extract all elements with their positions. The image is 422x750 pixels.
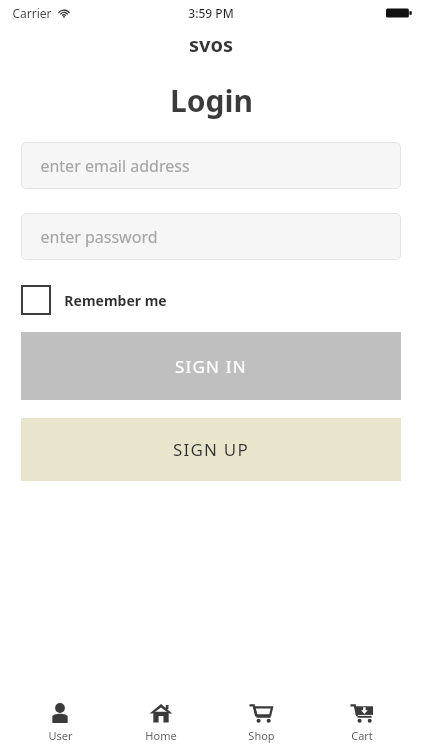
button[interactable]: Cart [322,697,402,747]
button[interactable]: User [20,697,100,747]
staticText: Remember me [64,291,167,310]
button[interactable]: Home [121,697,201,747]
staticText: Home [145,728,177,743]
staticText: User [48,728,73,743]
button[interactable]: SIGN UP [21,418,401,481]
staticText: Cart [351,728,373,743]
staticText: Login [170,80,253,120]
staticText: SIGN UP [173,438,249,461]
staticText: Shop [248,728,275,743]
staticText: 3:59 PM [188,5,234,21]
button[interactable]: Remember me [21,285,167,315]
staticText: enter password [40,226,158,248]
staticText: svos [189,31,233,58]
button[interactable]: SIGN IN [21,332,401,400]
staticText: enter email address [40,155,190,177]
button[interactable]: enter email address [21,142,401,189]
button[interactable]: enter password [21,213,401,260]
staticText: SIGN IN [175,355,247,378]
button[interactable]: Shop [221,697,301,747]
staticText: Carrier [12,5,52,21]
